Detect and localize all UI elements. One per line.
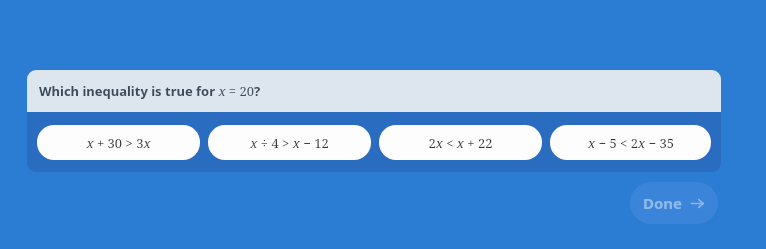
- staticText: 2x < x + 22: [428, 134, 493, 152]
- button[interactable]: x − 5 < 2x − 35: [550, 125, 711, 160]
- button[interactable]: x + 30 > 3x: [37, 125, 200, 160]
- staticText: Done: [643, 193, 683, 213]
- staticText: x ÷ 4 > x − 12: [250, 134, 329, 152]
- staticText: x + 30 > 3x: [86, 134, 151, 152]
- button[interactable]: Done: [630, 182, 718, 224]
- other: Done, next: [690, 196, 705, 211]
- button[interactable]: x ÷ 4 > x − 12: [208, 125, 371, 160]
- staticText: Which inequality is true for x = 20?: [39, 82, 261, 100]
- button[interactable]: 2x < x + 22: [379, 125, 542, 160]
- staticText: x − 5 < 2x − 35: [588, 134, 674, 152]
